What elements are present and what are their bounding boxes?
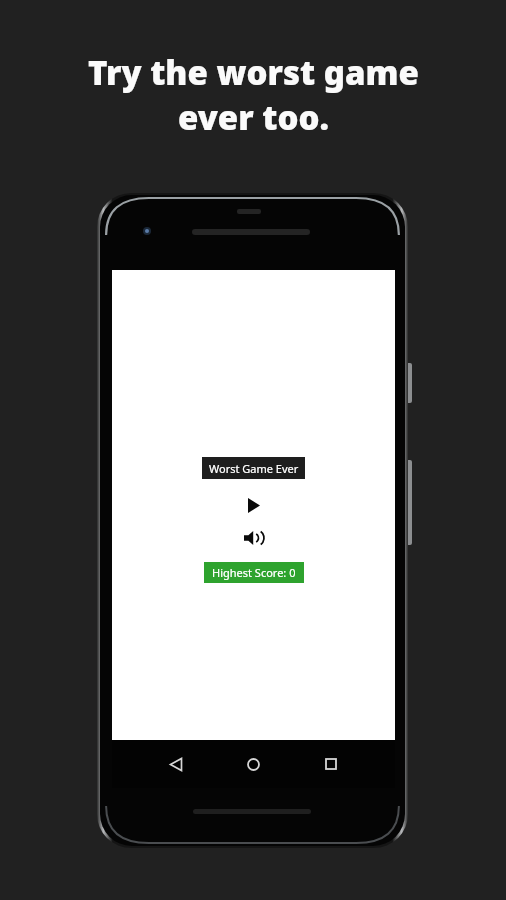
button[interactable]: Highest Score: 0 <box>204 562 304 583</box>
button[interactable]: Worst Game Ever <box>202 457 305 479</box>
button[interactable]: Recent apps <box>313 746 349 782</box>
button[interactable]: Home <box>235 746 271 782</box>
staticText: Highest Score: 0 <box>212 565 296 580</box>
button[interactable]: Sound on <box>237 526 271 550</box>
staticText: Try the worst game ever too. <box>88 50 419 139</box>
button[interactable]: Back <box>158 746 194 782</box>
button[interactable]: Play <box>237 494 271 516</box>
staticText: Worst Game Ever <box>209 461 299 476</box>
